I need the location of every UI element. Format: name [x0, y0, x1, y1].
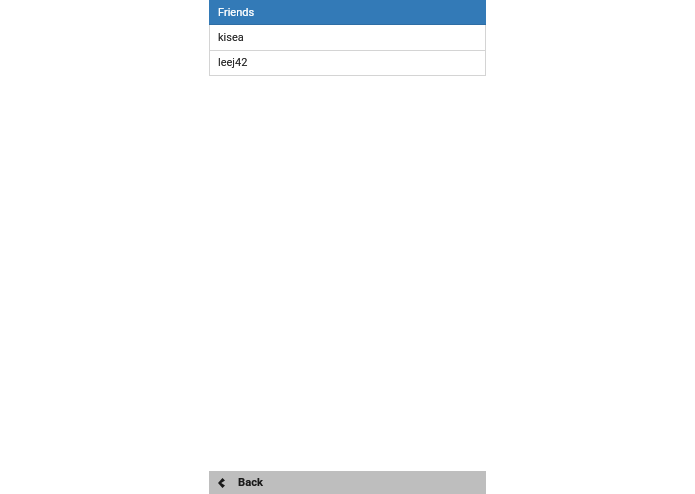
other: Back: [218, 478, 225, 488]
staticText: Back: [238, 476, 263, 489]
staticText: kisea: [218, 31, 244, 44]
staticText: kisea: [218, 31, 244, 44]
button[interactable]: Back: [209, 471, 486, 494]
staticText: Back: [238, 476, 263, 489]
staticText: Friends: [218, 6, 255, 19]
button[interactable]: kisea: [209, 25, 486, 51]
staticText: leej42: [218, 56, 248, 69]
button[interactable]: leej42: [209, 51, 486, 76]
button[interactable]: Friends: [209, 0, 486, 25]
staticText: leej42: [218, 56, 248, 69]
